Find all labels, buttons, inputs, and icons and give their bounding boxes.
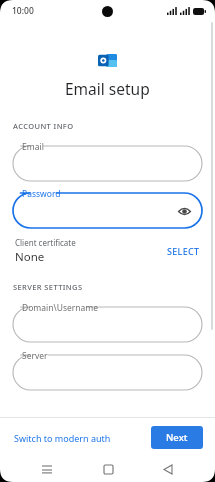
button[interactable]: Back	[155, 457, 181, 482]
staticText: Switch to modern auth	[14, 432, 111, 444]
staticText: Email setup	[65, 78, 150, 99]
staticText: SERVER SETTINGS	[13, 282, 83, 292]
button[interactable]: Recent apps	[34, 457, 60, 482]
staticText: 10:00	[12, 5, 34, 17]
button[interactable]: Domain\Username	[13, 301, 202, 342]
button[interactable]: Server	[13, 349, 202, 390]
button[interactable]: Client certificate	[13, 237, 202, 265]
staticText: Email	[22, 141, 44, 153]
button[interactable]: Switch to modern auth	[12, 426, 113, 450]
staticText: Server	[22, 350, 48, 362]
staticText: Next	[166, 431, 188, 444]
staticText: SELECT	[167, 245, 200, 257]
staticText: ACCOUNT INFO	[13, 121, 74, 131]
button[interactable]: Password	[13, 187, 202, 228]
button[interactable]: Home	[95, 457, 121, 482]
button[interactable]: Show password	[175, 202, 193, 220]
button[interactable]: Next	[151, 426, 203, 449]
staticText: Password	[22, 188, 61, 200]
button[interactable]: Email	[13, 140, 202, 181]
staticText: Domain\Username	[22, 302, 99, 314]
staticText: Client certificate	[15, 237, 76, 248]
staticText: None	[15, 249, 45, 265]
